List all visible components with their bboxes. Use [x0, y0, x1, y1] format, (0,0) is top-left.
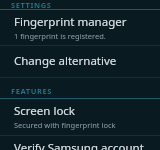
staticText: Screen lock [14, 103, 76, 119]
button[interactable]: Change alternative password [0, 46, 160, 78]
staticText: SETTINGS [11, 0, 52, 9]
staticText: Verify Samsung account [14, 140, 144, 150]
staticText: 1 fingerprint is registered. [14, 31, 106, 41]
button[interactable]: Fingerprint manager [0, 10, 160, 46]
staticText: Change alternative password [14, 53, 154, 69]
button[interactable]: Screen lock [0, 99, 160, 136]
staticText: Fingerprint manager [14, 14, 127, 30]
staticText: Secured with fingerprint lock [14, 120, 116, 130]
staticText: FEATURES [11, 86, 53, 96]
button[interactable]: Verify Samsung account [0, 136, 160, 150]
